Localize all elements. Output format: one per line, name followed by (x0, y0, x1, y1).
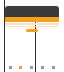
button[interactable] (5, 63, 15, 72)
button[interactable] (15, 63, 26, 72)
button[interactable] (26, 29, 38, 32)
button[interactable] (26, 63, 37, 72)
button[interactable] (48, 63, 59, 72)
button[interactable] (37, 63, 48, 72)
